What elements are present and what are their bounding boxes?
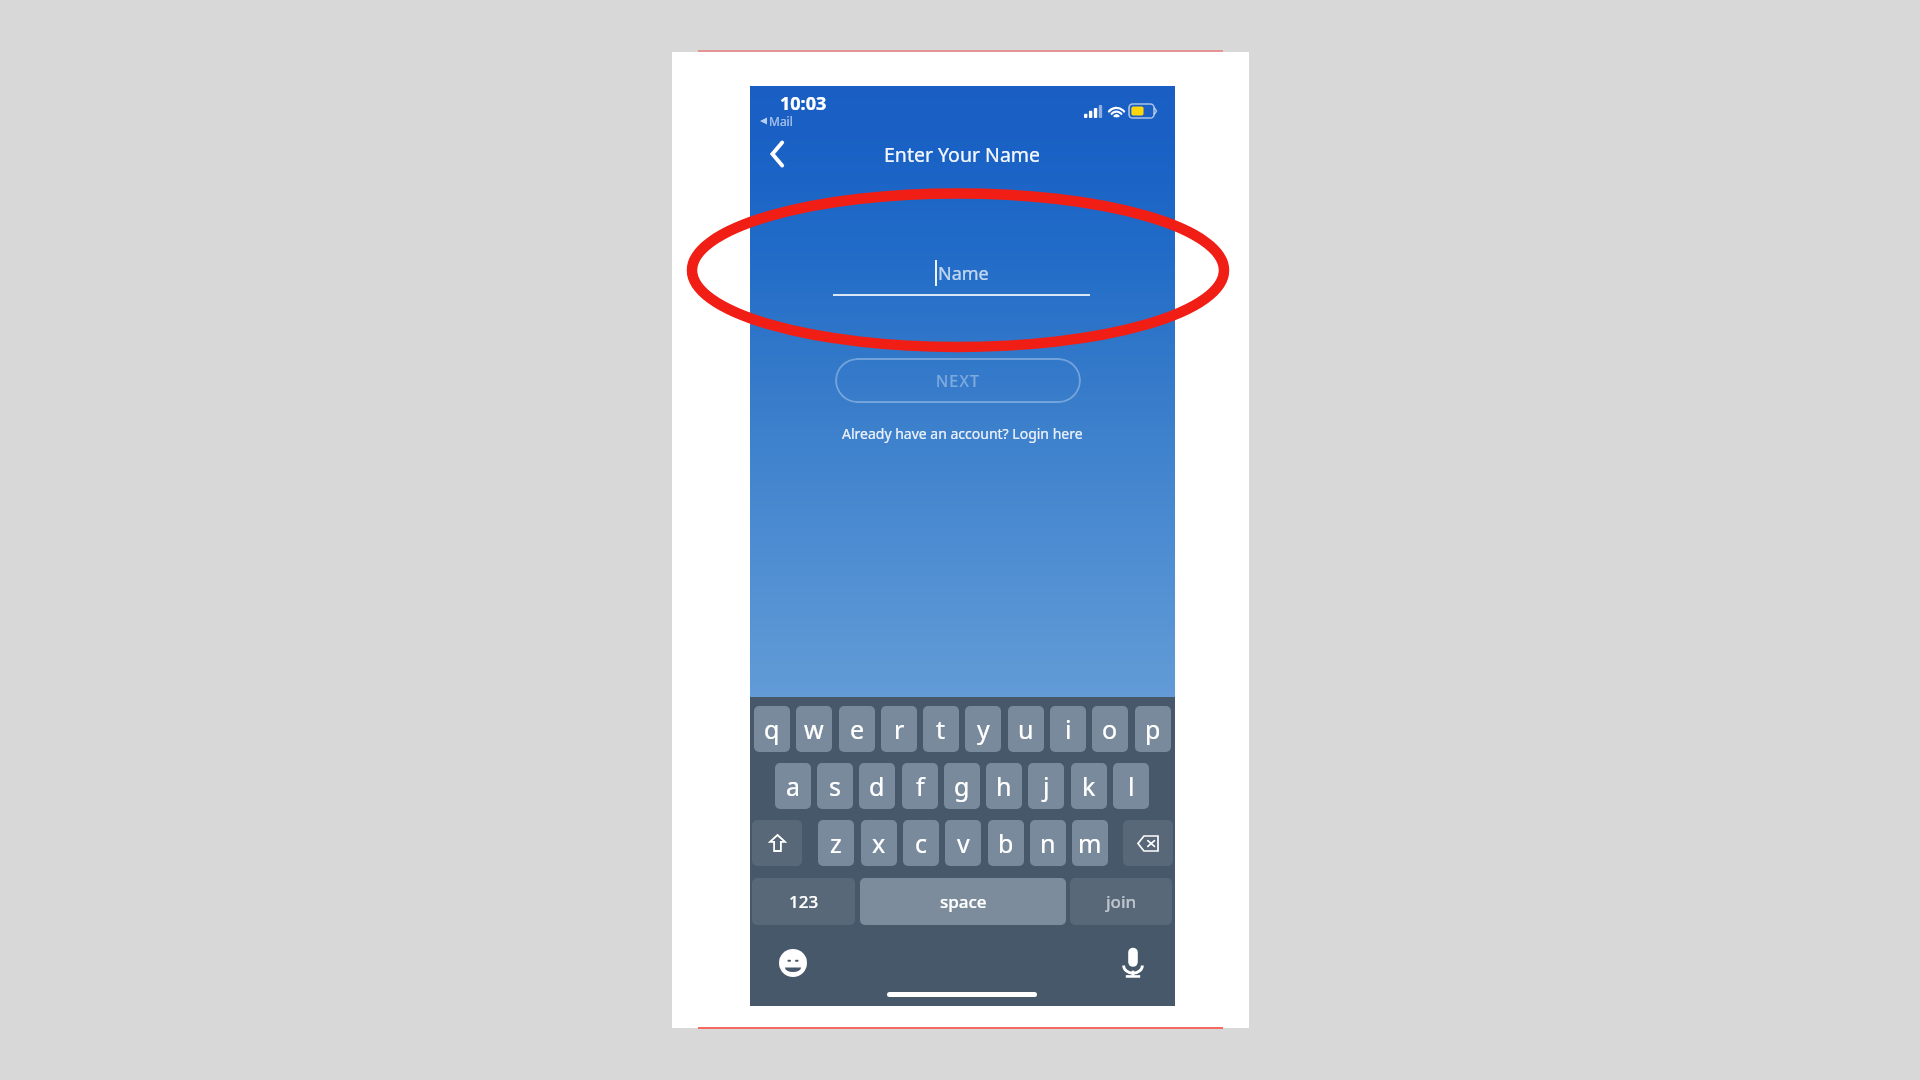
button[interactable]: t [923, 706, 959, 752]
staticText: r [894, 712, 905, 746]
button[interactable]: Already have an account? Login here [838, 422, 1086, 444]
staticText: Mail [769, 113, 793, 129]
button[interactable]: g [944, 763, 980, 809]
button[interactable]: n [1030, 820, 1066, 866]
staticText: c [915, 826, 928, 860]
button[interactable]: d [859, 763, 895, 809]
button[interactable]: Backspace [1123, 820, 1173, 866]
button[interactable]: join [1070, 878, 1172, 925]
staticText: p [1145, 712, 1161, 746]
staticText: b [998, 826, 1014, 860]
button[interactable]: NEXT [835, 358, 1081, 403]
button[interactable]: f [902, 763, 938, 809]
button[interactable]: i [1050, 706, 1086, 752]
button[interactable]: Emoji keyboard [779, 949, 807, 977]
button[interactable]: s [817, 763, 853, 809]
button[interactable]: j [1028, 763, 1064, 809]
button[interactable]: b [988, 820, 1024, 866]
button[interactable]: q [754, 706, 790, 752]
staticText: join [1106, 890, 1137, 913]
button[interactable]: p [1135, 706, 1171, 752]
staticText: d [869, 769, 885, 803]
staticText: j [1043, 769, 1050, 803]
staticText: m [1078, 826, 1102, 860]
button[interactable]: space [860, 878, 1066, 925]
button[interactable]: h [986, 763, 1022, 809]
button[interactable]: m [1072, 820, 1108, 866]
button[interactable]: l [1113, 763, 1149, 809]
staticText: h [996, 769, 1012, 803]
button[interactable]: w [796, 706, 832, 752]
button[interactable]: e [839, 706, 875, 752]
staticText: v [957, 826, 970, 860]
staticText: a [786, 769, 801, 803]
button[interactable]: u [1008, 706, 1044, 752]
button[interactable]: Shift [752, 820, 802, 866]
button[interactable]: k [1071, 763, 1107, 809]
staticText: t [936, 712, 946, 746]
staticText: z [830, 826, 842, 860]
button[interactable]: a [775, 763, 811, 809]
staticText: Already have an account? Login here [842, 424, 1083, 443]
staticText: n [1040, 826, 1056, 860]
staticText: l [1128, 769, 1135, 803]
staticText: i [1065, 712, 1072, 746]
staticText: space [940, 890, 987, 913]
button[interactable]: c [903, 820, 939, 866]
staticText: q [764, 712, 780, 746]
button[interactable]: o [1092, 706, 1128, 752]
staticText: NEXT [936, 370, 981, 392]
staticText: u [1018, 712, 1034, 746]
button[interactable]: 123 [752, 878, 855, 925]
staticText: s [829, 769, 841, 803]
staticText: w [804, 712, 824, 746]
staticText: 10:03 [780, 91, 827, 116]
staticText: Enter Your Name [884, 141, 1041, 168]
staticText: f [916, 769, 925, 803]
button[interactable]: Name input field [833, 252, 1090, 294]
staticText: y [977, 712, 990, 746]
button[interactable]: y [965, 706, 1001, 752]
button[interactable]: z [818, 820, 854, 866]
staticText: g [954, 769, 970, 803]
staticText: e [850, 712, 865, 746]
button[interactable]: Voice input [1121, 947, 1145, 979]
button[interactable]: Back [762, 136, 798, 172]
button[interactable]: x [861, 820, 897, 866]
staticText: x [872, 826, 886, 860]
staticText: 123 [789, 890, 819, 913]
staticText: Name [938, 261, 989, 286]
button[interactable]: v [945, 820, 981, 866]
staticText: k [1082, 769, 1096, 803]
button[interactable]: r [881, 706, 917, 752]
staticText: o [1102, 712, 1118, 746]
